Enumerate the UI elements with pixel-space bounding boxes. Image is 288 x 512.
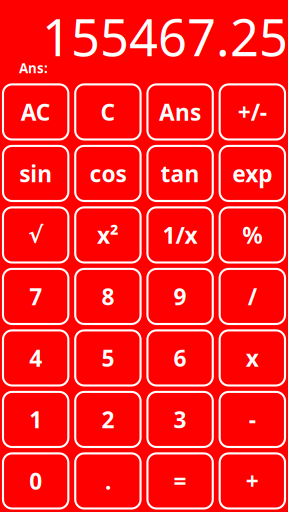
staticText: 6 (174, 343, 187, 373)
staticText: 0 (29, 466, 42, 496)
staticText: Ans (159, 97, 201, 127)
button[interactable]: Plus (220, 453, 285, 508)
staticText: C (100, 97, 115, 127)
staticText: = (174, 466, 187, 496)
button[interactable]: Squared (75, 207, 140, 262)
staticText: % (242, 220, 262, 250)
button[interactable]: Equals (147, 453, 213, 508)
button[interactable]: Tangent (147, 146, 213, 201)
button[interactable]: Nine (147, 269, 213, 324)
button[interactable]: Clear (75, 84, 140, 139)
button[interactable]: Zero (3, 453, 68, 508)
button[interactable]: Six (147, 330, 213, 385)
staticText: + (246, 466, 259, 496)
button[interactable]: Answer (147, 84, 213, 139)
button[interactable]: Three (147, 392, 213, 447)
button[interactable]: Four (3, 330, 68, 385)
staticText: +/- (238, 97, 267, 127)
button[interactable]: Seven (3, 269, 68, 324)
button[interactable]: Square root (3, 207, 68, 262)
button[interactable]: Multiply (220, 330, 285, 385)
button[interactable]: Eight (75, 269, 140, 324)
button[interactable]: Cosine (75, 146, 140, 201)
staticText: cos (89, 158, 126, 188)
staticText: 9 (174, 281, 187, 311)
staticText: / (248, 281, 257, 311)
staticText: AC (21, 97, 51, 127)
staticText: x² (97, 220, 119, 250)
button[interactable]: Exponential (220, 146, 285, 201)
staticText: - (249, 404, 256, 434)
button[interactable]: Percent (220, 207, 285, 262)
staticText: 3 (174, 404, 187, 434)
button[interactable]: Sine (3, 146, 68, 201)
staticText: 8 (101, 281, 114, 311)
staticText: 7 (29, 281, 42, 311)
button[interactable]: Two (75, 392, 140, 447)
button[interactable]: Minus (220, 392, 285, 447)
button[interactable]: Divide (220, 269, 285, 324)
button[interactable]: Plus minus (220, 84, 285, 139)
staticText: x (246, 343, 259, 373)
button[interactable]: One (3, 392, 68, 447)
staticText: tan (161, 158, 200, 188)
staticText: 155467.25 (42, 3, 288, 70)
button[interactable]: Decimal point (75, 453, 140, 508)
staticText: 4 (29, 343, 42, 373)
staticText: 5 (101, 343, 114, 373)
staticText: sin (19, 158, 52, 188)
button[interactable]: All clear (3, 84, 68, 139)
staticText: 1/x (163, 220, 198, 250)
button[interactable]: Five (75, 330, 140, 385)
button[interactable]: Reciprocal (147, 207, 213, 262)
staticText: . (105, 466, 111, 496)
staticText: √ (28, 222, 43, 248)
staticText: exp (232, 158, 272, 188)
staticText: Ans: (19, 59, 48, 77)
staticText: 1 (29, 404, 42, 434)
staticText: 2 (101, 404, 114, 434)
